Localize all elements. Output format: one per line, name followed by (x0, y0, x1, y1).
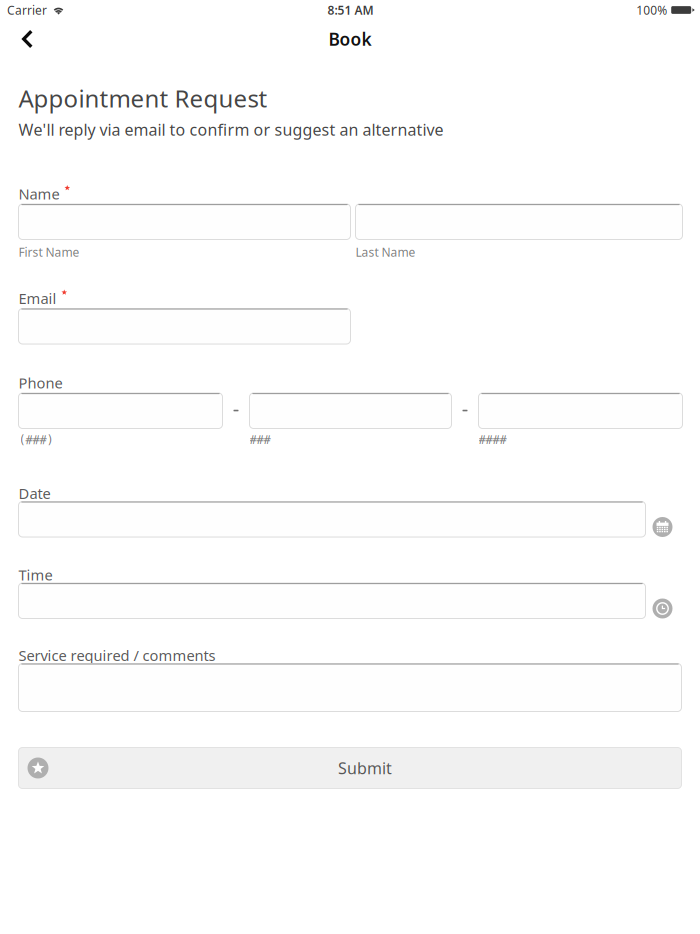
button[interactable]: Back (0, 20, 44, 58)
staticText: Service required / comments (18, 645, 215, 665)
staticText: Book (328, 27, 371, 50)
button[interactable]: Submit (18, 747, 681, 788)
button[interactable]: Pick date (652, 517, 672, 537)
staticText: 8:51 AM (328, 2, 374, 18)
staticText: Email (18, 288, 56, 308)
staticText: Name (18, 184, 59, 203)
button[interactable]: Pick time (652, 598, 672, 618)
staticText: Submit (338, 757, 392, 779)
staticText: We'll reply via email to confirm or sugg… (18, 119, 443, 140)
staticText: Time (18, 565, 52, 584)
staticText: 100% (636, 2, 667, 18)
staticText: (###) (18, 433, 53, 447)
staticText: Appointment Request (18, 82, 267, 114)
staticText: Phone (18, 373, 62, 392)
staticText: Last Name (355, 244, 415, 260)
staticText: ### (249, 433, 270, 447)
staticText: #### (478, 433, 506, 447)
staticText: Carrier (7, 2, 47, 18)
staticText: First Name (18, 244, 79, 260)
staticText: Date (18, 483, 50, 503)
